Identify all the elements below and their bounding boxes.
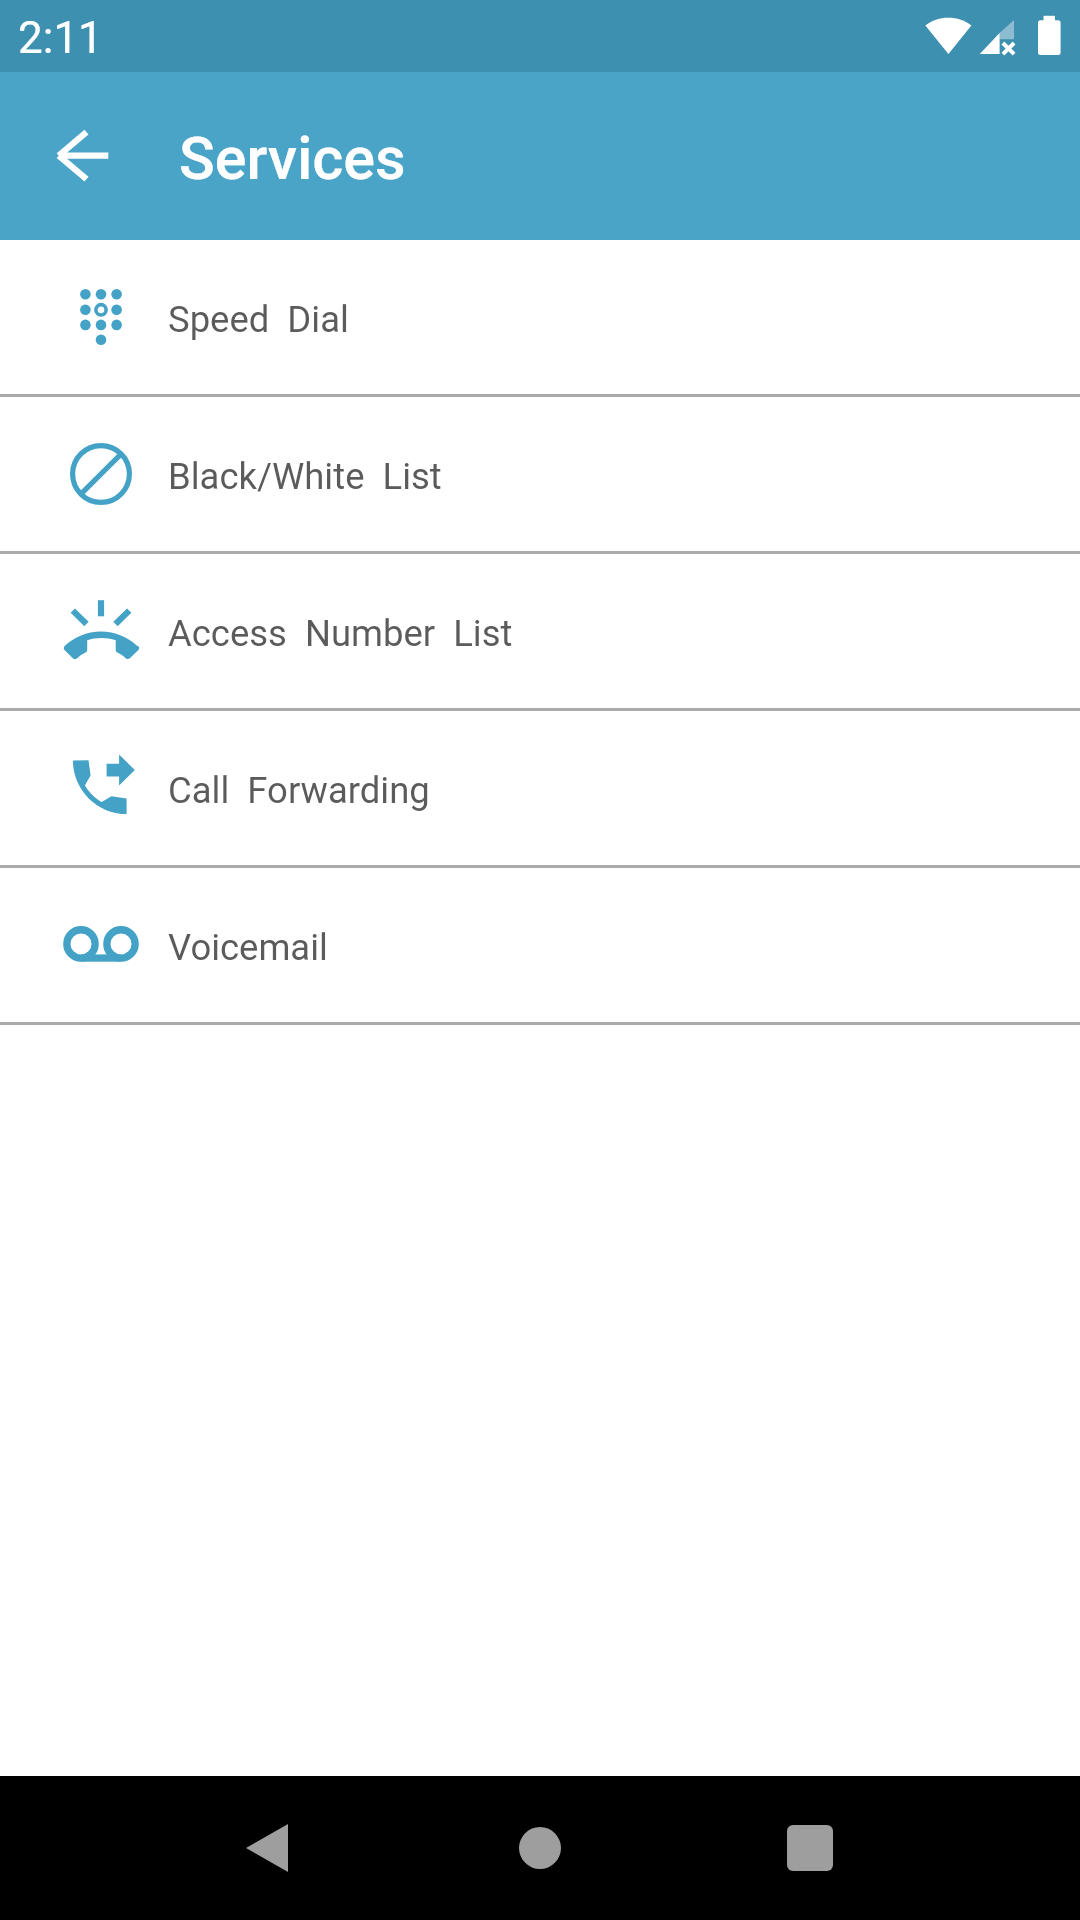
- button[interactable]: Back: [0, 1776, 360, 1920]
- staticText: Services: [179, 124, 406, 193]
- staticText: Access Number List: [168, 612, 513, 655]
- staticText: Black/White List: [168, 455, 442, 498]
- button[interactable]: Back: [36, 108, 132, 204]
- staticText: Voicemail: [168, 926, 328, 969]
- button[interactable]: Call Forwarding: [0, 711, 1080, 865]
- button[interactable]: Black/White List: [0, 397, 1080, 551]
- staticText: Call Forwarding: [168, 769, 430, 812]
- staticText: Speed Dial: [168, 298, 349, 341]
- button[interactable]: Recent apps: [720, 1776, 1080, 1920]
- button[interactable]: Home: [360, 1776, 720, 1920]
- button[interactable]: Voicemail: [0, 868, 1080, 1022]
- button[interactable]: Access Number List: [0, 554, 1080, 708]
- button[interactable]: Speed Dial: [0, 240, 1080, 394]
- staticText: 2:11: [18, 12, 103, 64]
